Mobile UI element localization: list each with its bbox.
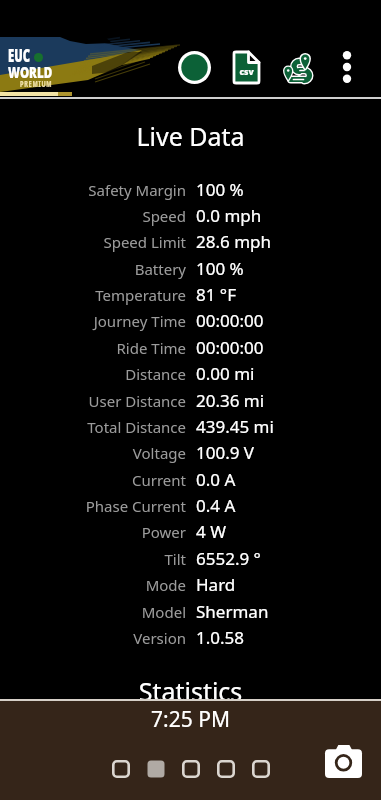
staticText: 0.0 A — [196, 468, 236, 491]
button[interactable]: Distance — [0, 361, 381, 387]
staticText: 100 % — [196, 257, 244, 280]
staticText: Sherman — [196, 600, 269, 623]
button[interactable]: Model — [0, 599, 381, 625]
staticText: Statistics — [0, 674, 381, 708]
staticText: Speed Limit — [103, 232, 186, 252]
button[interactable]: User Distance — [0, 388, 381, 414]
button[interactable]: Recent app 1 — [112, 760, 130, 778]
staticText: csv — [239, 65, 255, 77]
staticText: Model — [141, 602, 186, 622]
button[interactable]: Version — [0, 625, 381, 651]
staticText: Temperature — [95, 285, 186, 305]
button[interactable]: Speed — [0, 203, 381, 229]
button[interactable]: Total Distance — [0, 414, 381, 440]
button[interactable]: More options — [327, 47, 367, 87]
staticText: 28.6 mph — [196, 230, 272, 253]
button[interactable]: Route — [274, 45, 319, 90]
button[interactable]: EUC World Premium — [0, 0, 381, 99]
staticText: Mode — [145, 575, 186, 595]
button[interactable]: Export CSV — [224, 45, 269, 90]
staticText: 100 % — [196, 178, 244, 201]
staticText: 20.36 mi — [196, 389, 265, 412]
staticText: 0.4 A — [196, 494, 236, 517]
staticText: Phase Current — [85, 496, 186, 516]
staticText: 0.0 mph — [196, 204, 262, 227]
button[interactable]: Journey Time — [0, 308, 381, 334]
staticText: Current — [132, 470, 186, 490]
staticText: Hard — [196, 573, 236, 596]
staticText: User Distance — [88, 391, 186, 411]
button[interactable]: Ride Time — [0, 335, 381, 361]
staticText: Battery — [134, 259, 186, 279]
staticText: 6552.9 ° — [196, 547, 261, 570]
button[interactable]: Recent app 5 — [252, 760, 270, 778]
staticText: Tilt — [164, 549, 186, 569]
button[interactable]: Tilt — [0, 546, 381, 572]
staticText: 100.9 V — [196, 441, 255, 464]
staticText: Power — [141, 522, 186, 542]
staticText: EUC — [8, 44, 30, 67]
button[interactable]: Start recording — [172, 45, 217, 90]
staticText: 81 °F — [196, 283, 236, 306]
staticText: Live Data — [0, 119, 381, 153]
staticText: Journey Time — [93, 311, 186, 331]
staticText: Ride Time — [116, 338, 186, 358]
staticText: Version — [133, 628, 186, 648]
staticText: 1.0.58 — [196, 626, 245, 649]
button[interactable]: Voltage — [0, 440, 381, 466]
button[interactable]: Speed Limit — [0, 229, 381, 255]
button[interactable]: Recent app 3 — [182, 760, 200, 778]
button[interactable]: Recent app 2 — [147, 760, 165, 778]
button[interactable]: Safety Margin — [0, 177, 381, 203]
staticText: PREMIUM — [20, 77, 53, 89]
staticText: Distance — [125, 364, 186, 384]
button[interactable]: Battery — [0, 256, 381, 282]
staticText: 00:00:00 — [196, 336, 264, 359]
staticText: Safety Margin — [88, 180, 186, 200]
button[interactable]: Recent app 4 — [217, 760, 235, 778]
button[interactable]: Temperature — [0, 282, 381, 308]
staticText: Speed — [142, 206, 186, 226]
staticText: WORLD — [8, 61, 52, 83]
button[interactable]: Mode — [0, 572, 381, 598]
staticText: 439.45 mi — [196, 415, 274, 438]
staticText: Total Distance — [87, 417, 186, 437]
button[interactable]: Camera — [319, 737, 367, 785]
button[interactable]: Power — [0, 519, 381, 545]
staticText: 00:00:00 — [196, 309, 264, 332]
button[interactable]: Current — [0, 467, 381, 493]
staticText: 4 W — [196, 520, 226, 543]
staticText: Voltage — [132, 443, 186, 463]
staticText: 7:25 PM — [0, 705, 381, 734]
button[interactable]: Phase Current — [0, 493, 381, 519]
staticText: 0.00 mi — [196, 362, 255, 385]
